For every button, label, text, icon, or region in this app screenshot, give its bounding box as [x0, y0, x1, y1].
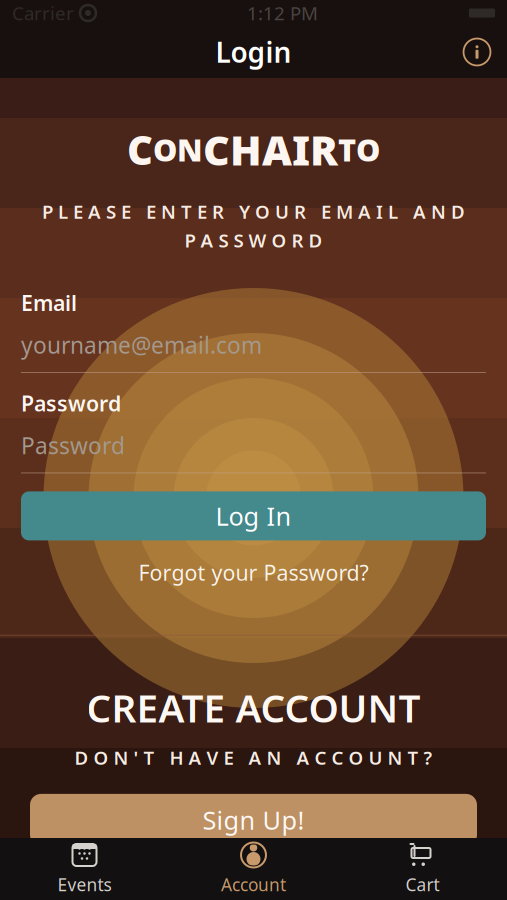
staticText: CHAIR: [203, 122, 338, 177]
staticText: CREATE ACCOUNT: [86, 682, 420, 733]
staticText: P A S S W O R D: [184, 228, 322, 253]
staticText: Forgot your Password?: [138, 558, 368, 587]
staticText: Account: [221, 873, 286, 896]
staticText: C: [127, 123, 153, 176]
button[interactable]: Events: [0, 840, 169, 898]
button[interactable]: Forgot your Password?: [128, 554, 378, 591]
staticText: Cart: [405, 873, 439, 896]
button[interactable]: Account: [169, 840, 338, 898]
staticText: ON: [153, 129, 203, 170]
staticText: Login: [215, 33, 291, 71]
staticText: 1:12 PM: [247, 1, 318, 25]
staticText: Email: [21, 289, 77, 317]
staticText: Password: [21, 389, 121, 417]
staticText: yourname@email.com: [21, 330, 262, 360]
staticText: Log In: [215, 499, 291, 533]
staticText: Events: [57, 873, 111, 896]
staticText: P L E A S E E N T E R Y O U R E M A I L …: [42, 199, 465, 224]
button[interactable]: Cart: [338, 840, 507, 898]
staticText: Sign Up!: [202, 803, 304, 837]
staticText: Carrier: [12, 1, 74, 25]
button[interactable]: Sign Up!: [30, 794, 477, 846]
button[interactable]: Log In: [21, 491, 486, 540]
button[interactable]: Information: [455, 30, 499, 74]
staticText: D O N ' T H A V E A N A C C O U N T ?: [74, 745, 432, 770]
staticText: Password: [21, 430, 125, 460]
staticText: TO: [338, 129, 380, 170]
